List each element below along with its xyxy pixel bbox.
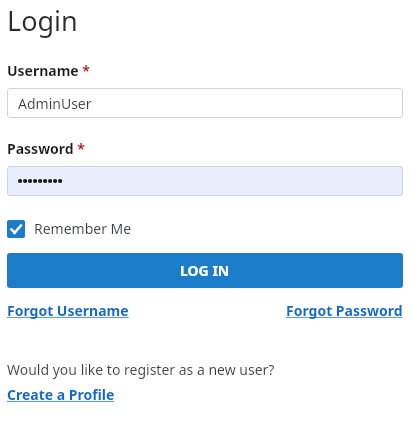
staticText: Password * xyxy=(7,139,85,158)
staticText: AdminUser xyxy=(18,94,92,113)
staticText: Would you like to register as a new user… xyxy=(7,360,275,379)
button: Password * xyxy=(7,139,85,158)
staticText: Forgot Password xyxy=(286,301,403,320)
staticText: Forgot Username xyxy=(7,301,129,320)
button[interactable] xyxy=(7,166,403,196)
button[interactable]: Create a Profile xyxy=(7,385,115,404)
button: Username * xyxy=(7,61,90,80)
button[interactable]: AdminUser xyxy=(7,88,403,118)
staticText: Username * xyxy=(7,61,90,80)
button[interactable]: Forgot Password xyxy=(286,301,403,320)
button[interactable]: LOG IN xyxy=(7,253,403,288)
other: Remember Me checkbox xyxy=(7,220,25,238)
button[interactable]: Remember Me checkbox xyxy=(7,217,132,240)
staticText: Remember Me xyxy=(34,219,132,238)
staticText: Login xyxy=(7,2,78,39)
button[interactable]: Forgot Username xyxy=(7,301,129,320)
staticText: LOG IN xyxy=(180,261,230,280)
staticText: Create a Profile xyxy=(7,385,115,404)
